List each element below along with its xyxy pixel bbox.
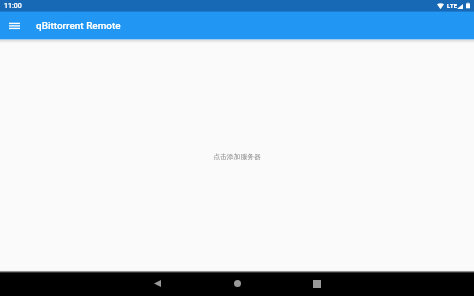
staticText: 点击添加服务器 [213, 152, 261, 161]
staticText: qBittorrent Remote [36, 20, 121, 32]
button[interactable]: Open navigation drawer [4, 12, 24, 39]
staticText: 11:00 [4, 2, 22, 10]
button[interactable]: Home [197, 271, 277, 296]
staticText: LTE [447, 3, 458, 10]
button[interactable]: Recent apps [277, 271, 357, 296]
button[interactable]: Back [117, 271, 197, 296]
